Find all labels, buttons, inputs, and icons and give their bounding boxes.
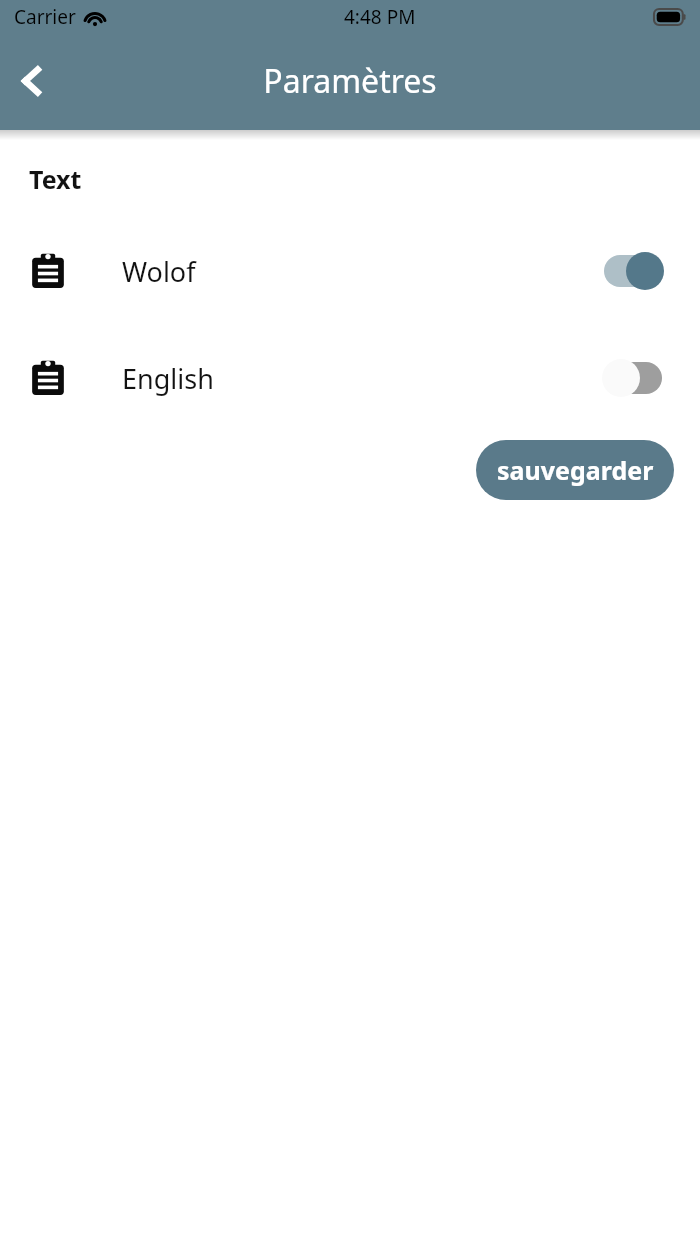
button[interactable]: sauvegarder bbox=[476, 440, 674, 500]
button[interactable]: Off bbox=[602, 358, 664, 398]
button[interactable]: English bbox=[0, 353, 700, 403]
staticText: Text bbox=[29, 162, 82, 196]
button[interactable]: Back bbox=[0, 49, 64, 113]
button[interactable]: Wolof bbox=[0, 246, 700, 296]
button[interactable]: On bbox=[602, 251, 664, 291]
staticText: sauvegarder bbox=[497, 453, 654, 487]
staticText: English bbox=[122, 360, 214, 397]
staticText: Wolof bbox=[122, 253, 196, 290]
staticText: Paramètres bbox=[0, 59, 700, 103]
staticText: Carrier bbox=[14, 4, 76, 30]
staticText: 4:48 PM bbox=[344, 4, 416, 30]
